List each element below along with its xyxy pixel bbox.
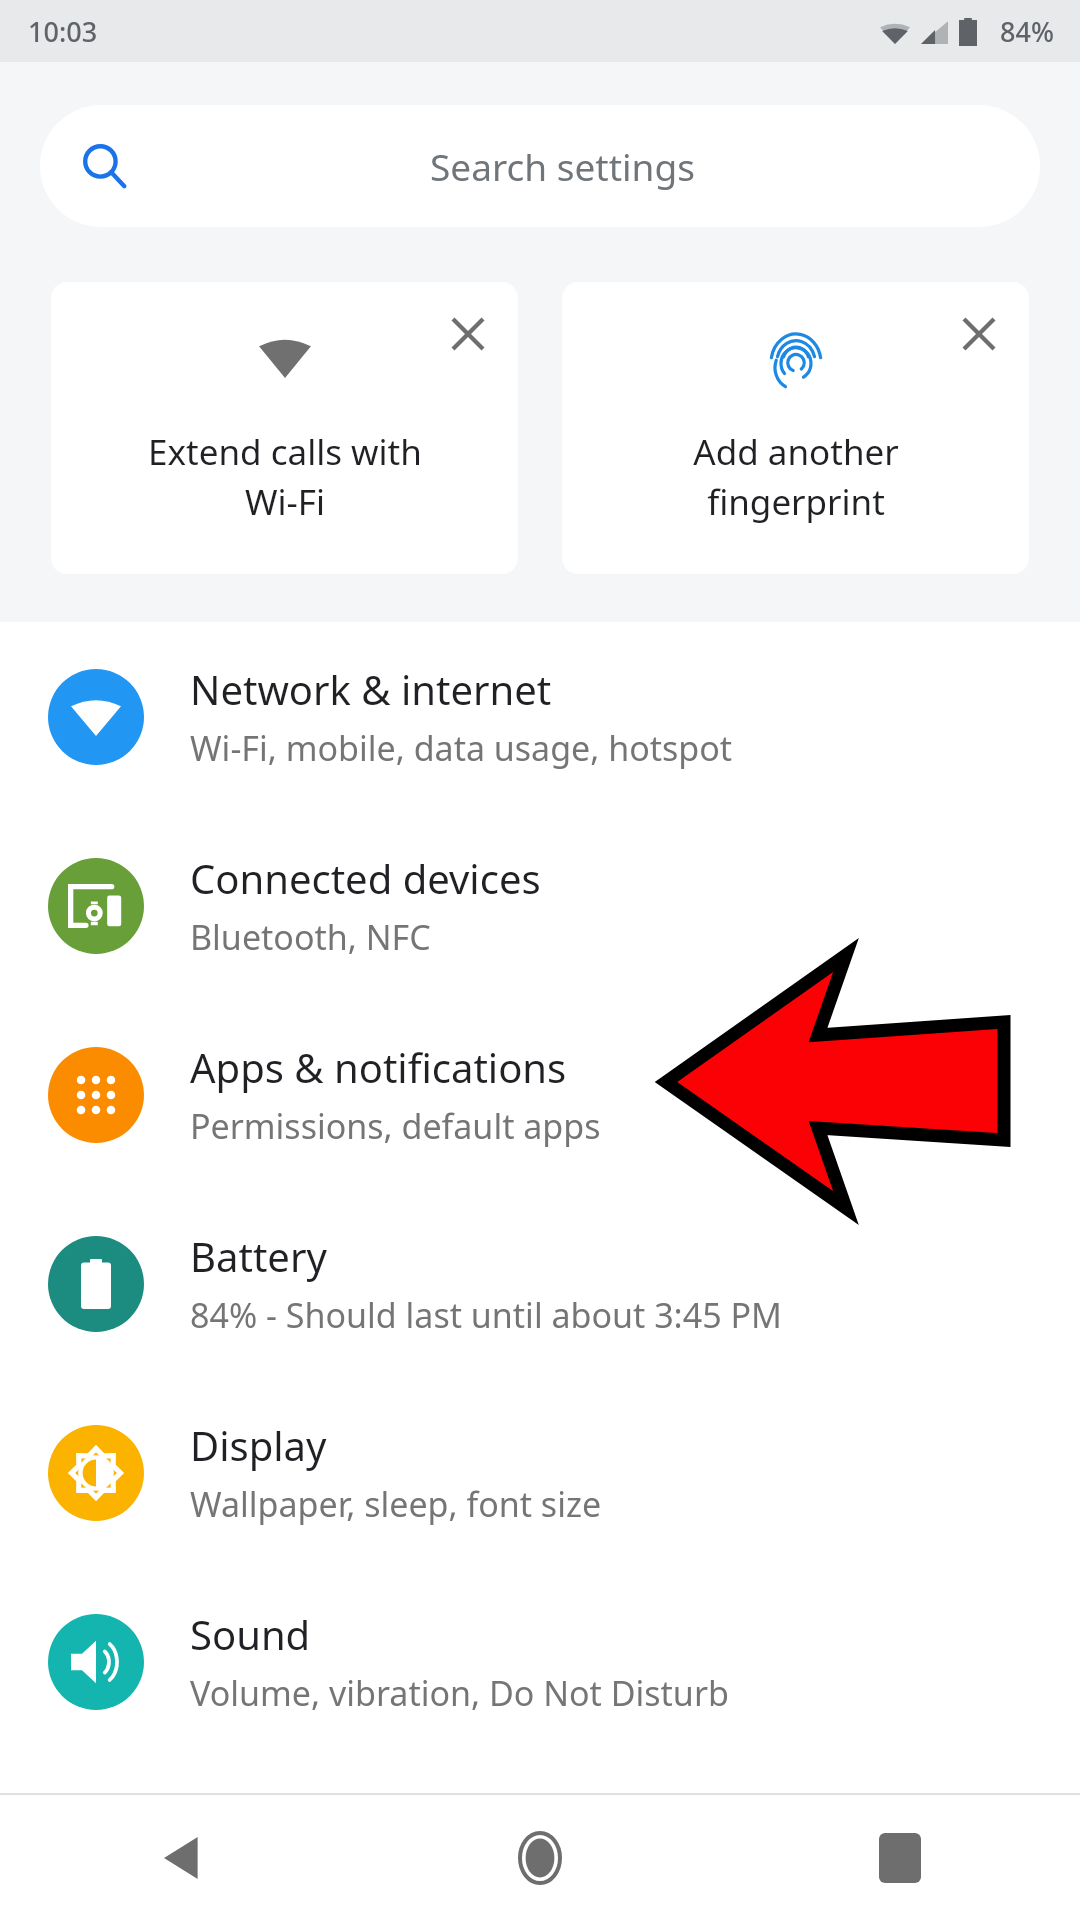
- button[interactable]: Battery: [0, 1189, 1080, 1378]
- button[interactable]: Extend calls with Wi-Fi: [51, 282, 518, 574]
- button[interactable]: Apps & notifications: [0, 1000, 1080, 1189]
- button[interactable]: Add another fingerprint: [562, 282, 1029, 574]
- staticText: Extend calls with Wi-Fi: [148, 428, 422, 525]
- staticText: Apps & notifications: [190, 1040, 567, 1094]
- staticText: 10:03: [28, 13, 98, 50]
- staticText: 84% - Should last until about 3:45 PM: [190, 1292, 782, 1338]
- staticText: Display: [190, 1418, 327, 1472]
- staticText: Network & internet: [190, 662, 552, 716]
- button[interactable]: Network & internet: [0, 622, 1080, 811]
- button[interactable]: Back: [0, 1795, 360, 1920]
- staticText: Sound: [190, 1607, 311, 1661]
- button[interactable]: Dismiss add another fingerprint: [951, 306, 1007, 362]
- button[interactable]: Dismiss extend calls with Wi-Fi: [440, 306, 496, 362]
- staticText: Wallpaper, sleep, font size: [190, 1481, 602, 1527]
- staticText: Search settings: [430, 141, 695, 191]
- staticText: Volume, vibration, Do Not Disturb: [190, 1670, 729, 1716]
- staticText: Wi-Fi, mobile, data usage, hotspot: [190, 725, 733, 771]
- button[interactable]: Recent apps: [720, 1795, 1080, 1920]
- staticText: 84%: [1000, 13, 1054, 50]
- button[interactable]: Search settings: [40, 105, 1040, 227]
- button[interactable]: Sound: [0, 1567, 1080, 1756]
- staticText: Bluetooth, NFC: [190, 914, 431, 960]
- button[interactable]: Display: [0, 1378, 1080, 1567]
- button[interactable]: Connected devices: [0, 811, 1080, 1000]
- staticText: Add another fingerprint: [693, 428, 899, 525]
- staticText: Permissions, default apps: [190, 1103, 601, 1149]
- staticText: Connected devices: [190, 851, 541, 905]
- button[interactable]: Home: [360, 1795, 720, 1920]
- staticText: Battery: [190, 1229, 327, 1283]
